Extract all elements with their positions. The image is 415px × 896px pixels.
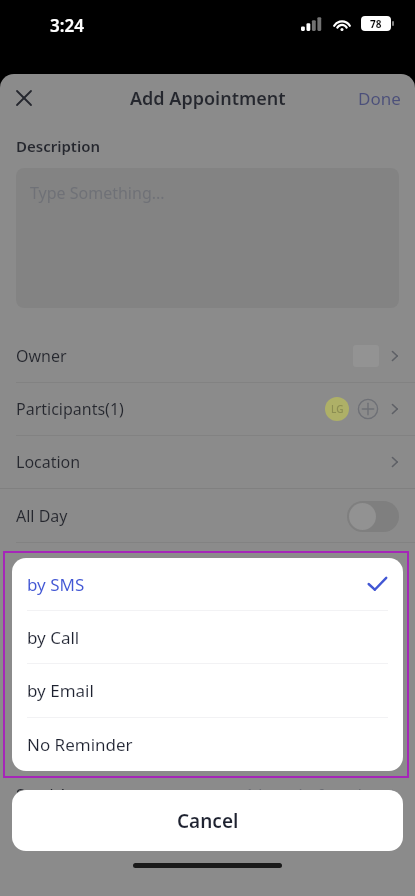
button[interactable]: Participants(1) <box>0 383 415 435</box>
staticText: Cancel <box>177 808 239 834</box>
staticText: 9:04 AM <box>338 558 399 580</box>
staticText: 3:24 <box>50 14 84 37</box>
staticText: by Call <box>27 626 80 649</box>
staticText: All Day <box>16 505 68 527</box>
staticText: LG <box>331 402 344 416</box>
staticText: Description <box>16 136 100 156</box>
button[interactable]: Location <box>0 436 415 488</box>
button[interactable]: by Email <box>12 664 403 717</box>
staticText: by SMS <box>27 573 85 596</box>
staticText: by Email <box>27 679 94 702</box>
button[interactable]: All Day <box>0 490 415 542</box>
button[interactable]: by SMS <box>12 558 403 610</box>
staticText: Type Something... <box>30 182 165 204</box>
button[interactable]: Owner <box>0 330 415 382</box>
button[interactable]: by Call <box>12 611 403 663</box>
staticText: Done <box>358 87 401 110</box>
button[interactable]: No Reminder <box>12 718 403 771</box>
staticText: Start <box>16 558 52 580</box>
button[interactable]: Done <box>358 87 401 110</box>
staticText: No Reminder <box>27 733 133 756</box>
button[interactable]: Close <box>8 82 40 114</box>
button[interactable]: All Day toggle <box>347 501 399 532</box>
staticText: Location <box>16 451 81 473</box>
staticText: Send At <box>16 784 74 806</box>
staticText: Add Appointment <box>130 86 286 111</box>
staticText: 78 <box>370 17 382 31</box>
staticText: 1 hour before due <box>245 784 381 806</box>
button[interactable]: Cancel <box>12 790 403 851</box>
staticText: Participants(1) <box>16 398 124 420</box>
staticText: Owner <box>16 345 67 367</box>
